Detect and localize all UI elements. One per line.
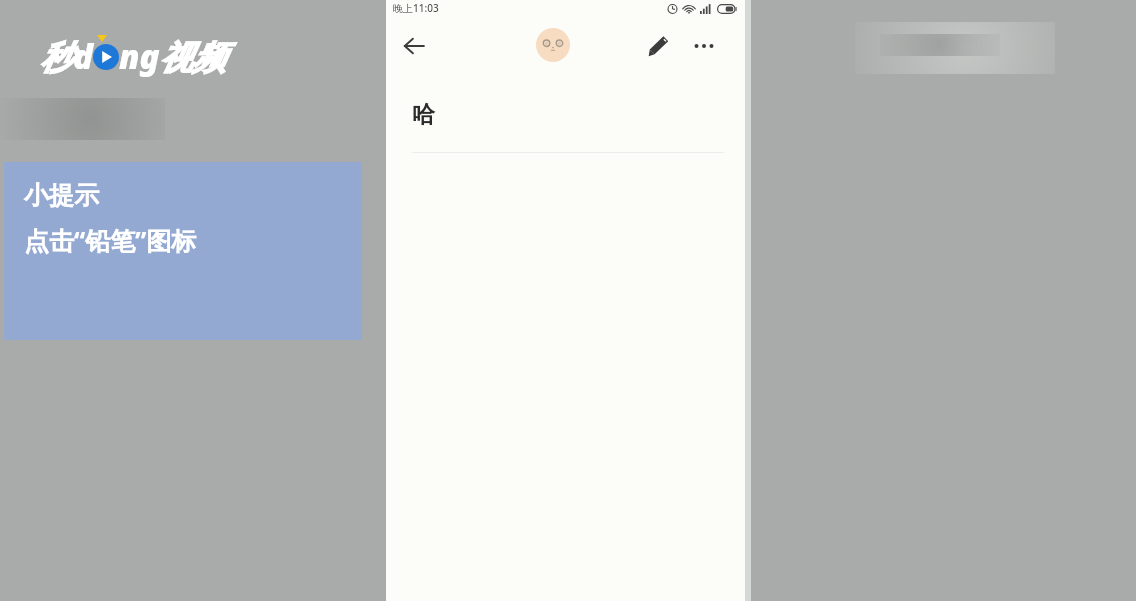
staticText: 晚上11:03 bbox=[393, 1, 439, 15]
button[interactable]: More options bbox=[684, 26, 724, 66]
button[interactable]: Back bbox=[394, 26, 434, 66]
staticText: 点击“铅笔”图标 bbox=[24, 223, 197, 257]
staticText: 小提示 bbox=[24, 180, 99, 211]
button[interactable]: Avatar bbox=[536, 28, 570, 62]
staticText: ng视频 bbox=[119, 34, 226, 79]
staticText: 哈 bbox=[412, 100, 435, 129]
button[interactable]: Edit bbox=[639, 26, 679, 66]
button[interactable]: 小提示 bbox=[4, 162, 362, 340]
staticText: 秒d bbox=[40, 34, 93, 79]
